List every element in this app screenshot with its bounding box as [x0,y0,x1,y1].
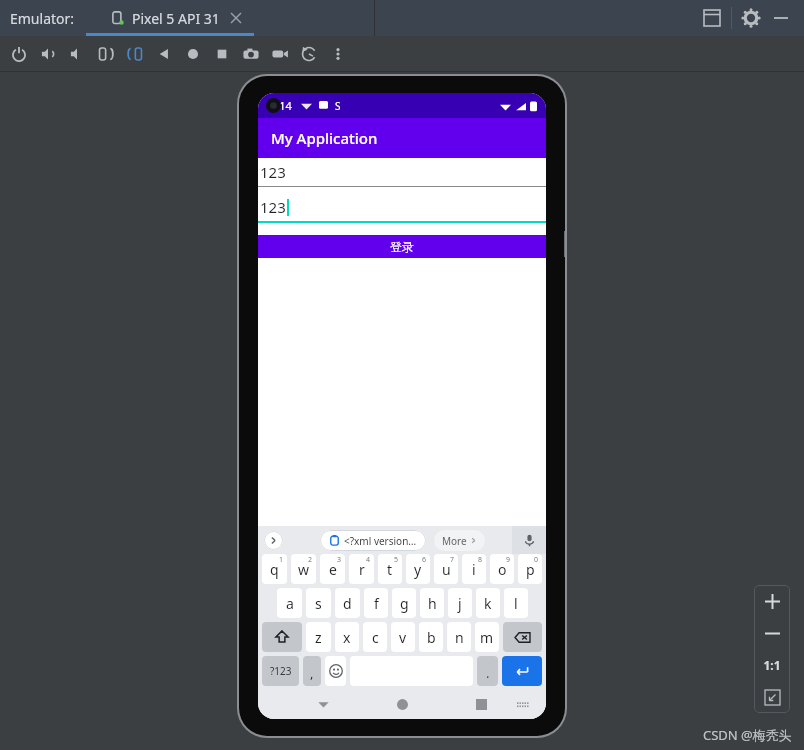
button[interactable]: r [349,554,374,584]
button[interactable]: d [335,588,360,618]
button[interactable]: 123 [258,158,546,193]
button[interactable]: Overview [207,36,236,72]
button[interactable]: Hide keyboard [310,691,336,717]
staticText: s [315,594,322,613]
staticText: 6 [422,555,427,565]
button[interactable]: z [306,622,331,652]
staticText: x [343,628,351,647]
button[interactable]: Screenshot [236,36,265,72]
button[interactable]: Zoom out [754,617,790,649]
button[interactable]: s [306,588,331,618]
button[interactable]: a [277,588,302,618]
button[interactable]: 登录 [258,235,546,258]
staticText: My Application [271,128,378,148]
staticText: <?xml version… [344,534,417,548]
button[interactable]: ?123 [262,656,299,686]
staticText: 4 [366,555,371,565]
button[interactable]: Recents [468,691,494,717]
button[interactable]: History [294,36,323,72]
other: Device tab icon [110,10,126,26]
button[interactable]: , [303,656,321,686]
button[interactable]: Volume down [62,36,91,72]
button[interactable]: Enter [502,656,542,686]
staticText: b [427,628,436,647]
button[interactable]: Home [389,691,415,717]
staticText: q [270,560,279,579]
button[interactable]: Backspace [503,622,542,652]
button[interactable]: <?xml version… [320,530,426,551]
staticText: 1:1 [763,657,781,673]
staticText: Emulator: [10,9,75,28]
button[interactable]: f [364,588,388,618]
staticText: 3 [337,555,342,565]
button[interactable]: k [476,588,500,618]
staticText: t [387,560,393,579]
button[interactable]: Record screen [265,36,294,72]
button[interactable]: w [291,554,316,584]
button[interactable]: n [447,622,471,652]
button[interactable]: Window [697,3,727,33]
staticText: v [399,628,407,647]
button[interactable]: Settings [736,3,766,33]
button[interactable]: Voice input [512,526,546,554]
button[interactable]: Home [178,36,207,72]
button[interactable]: Emoji [325,656,346,686]
button[interactable]: y [406,554,430,584]
staticText: o [498,560,507,579]
staticText: , [310,664,314,682]
staticText: d [343,594,352,613]
staticText: n [455,628,464,647]
button[interactable]: Minimize [766,3,796,33]
staticText: h [428,594,437,613]
button[interactable]: m [475,622,499,652]
staticText: i [472,560,476,579]
staticText: S [335,99,341,113]
button[interactable]: Shift [262,622,302,652]
button[interactable]: t [378,554,402,584]
button[interactable]: Expand suggestions [264,531,283,550]
button[interactable]: Actual size [754,649,790,681]
button[interactable]: b [419,622,443,652]
button[interactable]: Zoom in [754,585,790,617]
button[interactable]: i [462,554,486,584]
button[interactable]: p [518,554,542,584]
button[interactable]: More [434,530,485,551]
button[interactable]: 123 [258,193,546,229]
button[interactable]: x [335,622,359,652]
button[interactable]: Switch keyboard [512,693,534,715]
button[interactable]: o [490,554,514,584]
staticText: j [458,594,462,613]
staticText: More [442,534,467,548]
staticText: m [480,628,494,647]
button[interactable]: e [320,554,345,584]
button[interactable]: g [392,588,416,618]
button[interactable]: . [477,656,498,686]
button[interactable]: v [391,622,415,652]
button[interactable]: Rotate left [91,36,120,72]
button[interactable]: c [363,622,387,652]
staticText: u [442,560,451,579]
staticText: . [486,664,490,682]
staticText: 123 [260,162,286,182]
button[interactable]: Power [4,36,33,72]
button[interactable]: Device tab icon [96,0,274,36]
button[interactable]: Rotate right [120,36,149,72]
button[interactable]: q [262,554,287,584]
staticText: z [315,628,322,647]
staticText: ?123 [270,664,292,678]
button[interactable]: j [448,588,472,618]
staticText: e [329,560,337,579]
staticText: 5 [394,555,399,565]
staticText: 0 [534,555,539,565]
button[interactable]: Volume up [33,36,62,72]
staticText: 2 [308,555,313,565]
staticText: a [286,594,294,613]
button[interactable]: l [504,588,528,618]
button[interactable]: u [434,554,458,584]
button[interactable]: Fit to window [754,681,790,713]
button[interactable]: More [323,36,352,72]
staticText: l [514,594,518,613]
button[interactable]: h [420,588,444,618]
button[interactable]: Back [149,36,178,72]
